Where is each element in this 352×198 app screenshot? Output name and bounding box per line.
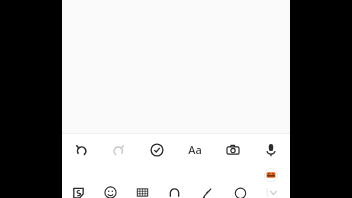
button[interactable]: Checklist [138,134,176,165]
button[interactable]: Audio [158,184,191,198]
button[interactable]: Sticker suggestion [264,168,278,182]
button[interactable]: Camera [214,134,252,165]
button[interactable]: GIF keyboard [126,184,158,198]
button[interactable]: Draw [191,184,224,198]
button[interactable]: Redo [100,134,138,165]
button[interactable]: Emoji [94,184,126,198]
button[interactable]: Stickers [62,184,94,198]
button[interactable]: Undo [62,134,100,165]
button[interactable]: Shapes [224,184,257,198]
button[interactable]: Text format [176,134,214,165]
button[interactable]: Voice input [252,134,290,165]
staticText: Aa [188,142,202,157]
button[interactable]: More [257,184,290,198]
